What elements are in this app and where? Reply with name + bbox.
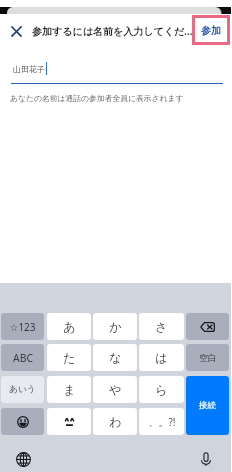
button[interactable]: 閉じる xyxy=(0,15,32,47)
button[interactable]: 削除 xyxy=(186,313,229,340)
button[interactable]: あいう xyxy=(1,376,44,403)
button[interactable]: ☆123 xyxy=(1,313,44,340)
staticText: や xyxy=(109,382,122,397)
button[interactable]: 空白 xyxy=(186,344,229,371)
staticText: 、。?! xyxy=(148,415,176,429)
button[interactable]: 、。?! xyxy=(139,408,184,435)
staticText: 参加 xyxy=(201,24,221,37)
staticText: は xyxy=(155,350,168,365)
staticText: あ xyxy=(63,319,76,334)
button[interactable]: 顔文字 xyxy=(47,408,91,435)
staticText: あなたの名前は通話の参加者全員に表示されます xyxy=(10,93,184,103)
staticText: 空白 xyxy=(199,352,217,363)
button[interactable]: 絵文字 xyxy=(1,408,44,435)
button[interactable]: わ xyxy=(93,408,137,435)
staticText: た xyxy=(63,350,76,365)
staticText: 山田花子 xyxy=(13,64,45,74)
button[interactable]: 接続 xyxy=(186,376,229,435)
button[interactable]: は xyxy=(139,344,184,371)
staticText: 接続 xyxy=(199,400,216,411)
button[interactable]: 参加 xyxy=(195,18,227,42)
staticText: ま xyxy=(63,382,76,397)
staticText: 参加するには名前を入力してくだ… xyxy=(32,24,193,38)
staticText: ☆123 xyxy=(9,320,36,334)
button[interactable]: 音声入力 xyxy=(196,449,216,469)
staticText: な xyxy=(109,350,122,365)
button[interactable]: ABC xyxy=(1,344,44,371)
button[interactable]: さ xyxy=(139,313,184,340)
button[interactable]: た xyxy=(47,344,91,371)
button[interactable]: 言語切替 xyxy=(13,449,33,469)
button[interactable]: か xyxy=(93,313,137,340)
button[interactable]: ら xyxy=(139,376,184,403)
button[interactable]: ま xyxy=(47,376,91,403)
staticText: わ xyxy=(109,414,122,429)
staticText: か xyxy=(109,319,122,334)
staticText: さ xyxy=(155,319,168,334)
staticText: あいう xyxy=(9,384,36,395)
staticText: ら xyxy=(155,382,168,397)
button[interactable]: や xyxy=(93,376,137,403)
button[interactable]: な xyxy=(93,344,137,371)
button[interactable]: あ xyxy=(47,313,91,340)
staticText: ABC xyxy=(13,351,33,365)
